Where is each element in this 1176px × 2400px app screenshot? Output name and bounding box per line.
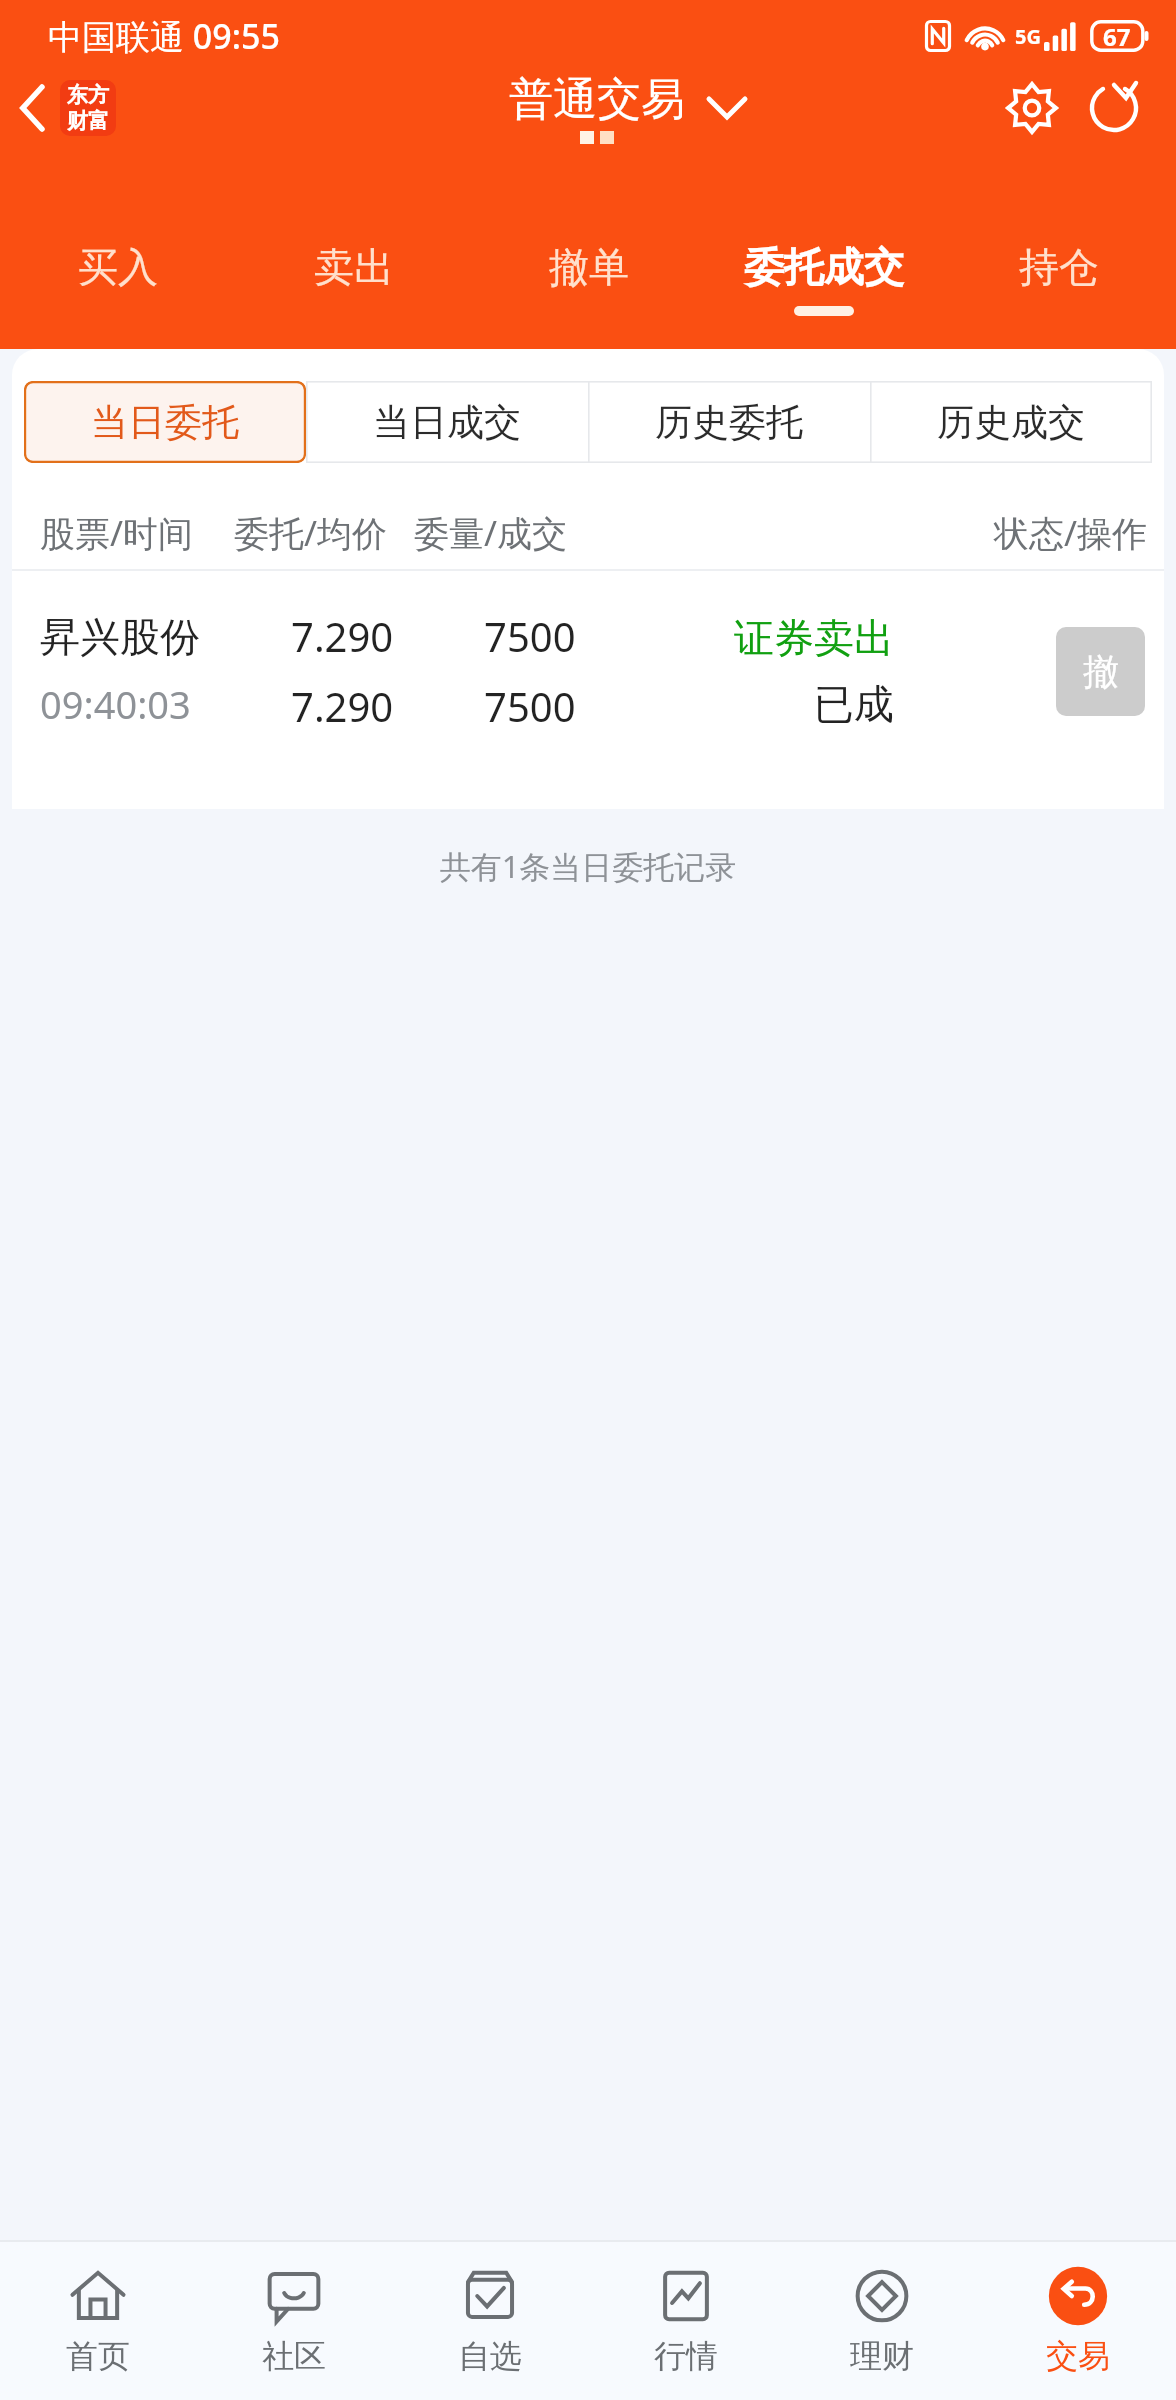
button[interactable]: 买入 xyxy=(0,224,236,349)
staticText: 社区 xyxy=(262,2336,326,2376)
staticText: 行情 xyxy=(654,2336,718,2376)
staticText: 卖出 xyxy=(314,242,394,292)
staticText: 委托/均价 xyxy=(234,509,388,557)
staticText: 7500 xyxy=(484,609,576,663)
button[interactable]: Back xyxy=(0,72,128,144)
staticText: 昇兴股份 xyxy=(40,612,200,662)
button[interactable]: Settings xyxy=(996,72,1068,144)
staticText: 持仓 xyxy=(1019,242,1099,292)
staticText: 撤 xyxy=(1083,649,1119,694)
staticText: 东方 xyxy=(67,82,109,108)
staticText: 证券卖出 xyxy=(734,613,894,663)
staticText: 交易 xyxy=(1046,2336,1110,2376)
staticText: 历史委托 xyxy=(655,399,803,446)
staticText: 5G xyxy=(1015,23,1041,50)
staticText: 当日委托 xyxy=(91,399,239,446)
staticText: 股票/时间 xyxy=(40,509,194,557)
button[interactable]: 当日成交 xyxy=(306,381,588,463)
button[interactable]: 行情 xyxy=(588,2240,784,2400)
staticText: 09:40:03 xyxy=(40,678,191,730)
button[interactable]: 卖出 xyxy=(236,224,471,349)
button[interactable]: 自选 xyxy=(392,2240,588,2400)
staticText: 中国联通 09:55 xyxy=(48,13,280,59)
button[interactable]: 理财 xyxy=(784,2240,980,2400)
button[interactable]: 首页 xyxy=(0,2240,196,2400)
button[interactable]: Refresh xyxy=(1078,72,1150,144)
staticText: 财富 xyxy=(67,108,109,134)
button[interactable]: 持仓 xyxy=(941,224,1176,349)
button[interactable]: 当日委托 xyxy=(24,381,306,463)
staticText: 历史成交 xyxy=(937,399,1085,446)
button[interactable]: 历史成交 xyxy=(870,381,1152,463)
button[interactable]: 昇兴股份 xyxy=(12,571,1164,771)
staticText: 已成 xyxy=(814,679,894,729)
staticText: 自选 xyxy=(458,2336,522,2376)
staticText: 共有1条当日委托记录 xyxy=(0,845,1176,887)
button[interactable]: 历史委托 xyxy=(588,381,870,463)
staticText: 委托成交 xyxy=(744,242,904,292)
button[interactable]: 委托成交 xyxy=(706,224,941,349)
staticText: 7.290 xyxy=(291,679,394,733)
button[interactable]: 普通交易 xyxy=(509,72,747,144)
staticText: 当日成交 xyxy=(373,399,521,446)
staticText: 首页 xyxy=(66,2336,130,2376)
button[interactable]: 撤 xyxy=(1056,627,1145,716)
staticText: 7500 xyxy=(484,679,576,733)
staticText: 67 xyxy=(1103,20,1131,52)
button[interactable]: 撤单 xyxy=(471,224,706,349)
button[interactable]: 社区 xyxy=(196,2240,392,2400)
staticText: 买入 xyxy=(78,242,158,292)
staticText: 普通交易 xyxy=(509,72,685,127)
staticText: 撤单 xyxy=(549,242,629,292)
staticText: 委量/成交 xyxy=(414,509,568,557)
staticText: 理财 xyxy=(850,2336,914,2376)
button[interactable]: 交易 xyxy=(980,2240,1176,2400)
staticText: 状态/操作 xyxy=(994,509,1148,557)
staticText: 7.290 xyxy=(291,609,394,663)
